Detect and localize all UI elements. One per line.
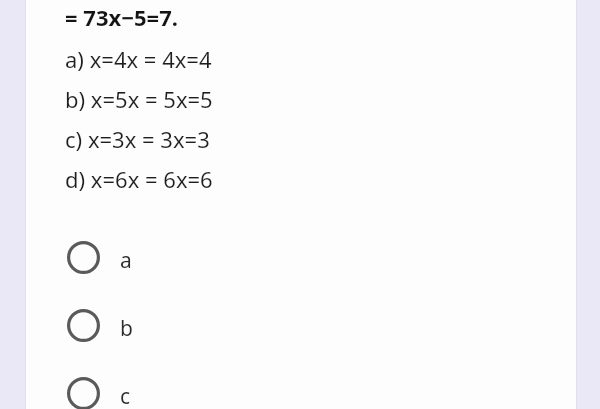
staticText: a) x=4x = 4x=4: [65, 44, 212, 74]
staticText: b: [120, 314, 133, 350]
staticText: d) x=6x = 6x=6: [65, 164, 213, 194]
button[interactable]: Option c: [59, 369, 169, 409]
staticText: c: [120, 382, 131, 409]
button[interactable]: Option b: [59, 301, 169, 350]
staticText: a: [120, 246, 132, 282]
staticText: b) x=5x = 5x=5: [65, 84, 213, 114]
button[interactable]: Option a: [59, 233, 169, 282]
staticText: = 73x−5=7.: [65, 2, 178, 32]
staticText: c) x=3x = 3x=3: [65, 124, 210, 154]
